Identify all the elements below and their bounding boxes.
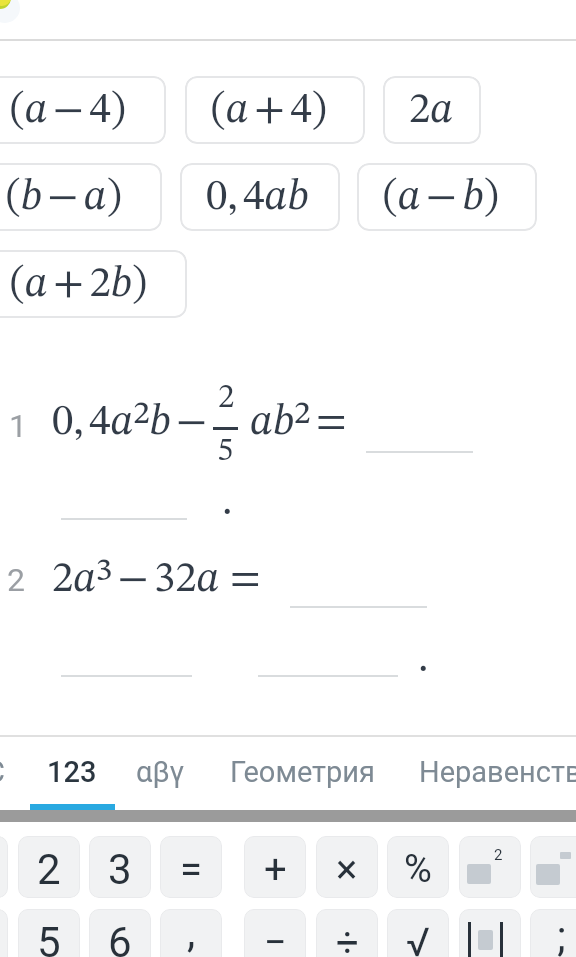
staticText: 123 (47, 755, 97, 789)
staticText: Неравенства (419, 755, 576, 789)
button[interactable]: ; (530, 909, 576, 957)
button[interactable]: (a + 2b) (0, 250, 187, 318)
staticText: 1 (9, 407, 27, 445)
staticText: √ (406, 919, 430, 957)
staticText: ; (557, 912, 566, 957)
button[interactable]: 2 (18, 836, 80, 898)
staticText: . (222, 481, 233, 524)
staticText: . (418, 638, 429, 681)
button[interactable]: (a + 4) (185, 76, 365, 144)
button[interactable]: , (160, 909, 222, 957)
staticText: 0, 4ab (206, 176, 309, 219)
staticText: 2 (7, 561, 25, 599)
staticText: С (0, 755, 5, 789)
staticText: (a + 4) (211, 89, 327, 132)
button[interactable] (530, 836, 576, 898)
button[interactable]: С (0, 755, 5, 789)
button[interactable]: 0, 4ab (180, 163, 340, 231)
button[interactable]: % (387, 836, 449, 898)
staticText: 2a (409, 89, 454, 132)
button[interactable]: × (316, 836, 378, 898)
staticText: % (404, 847, 432, 892)
staticText: = (180, 846, 202, 893)
staticText: αβγ (136, 755, 185, 789)
button[interactable]: αβγ (136, 755, 185, 789)
button[interactable]: + (244, 836, 306, 898)
staticText: × (336, 846, 358, 893)
button[interactable] (459, 909, 521, 957)
button[interactable]: 5 (18, 909, 80, 957)
staticText: (a + 2b) (10, 263, 147, 306)
button[interactable]: √ (387, 909, 449, 957)
staticText: Геометрия (230, 755, 375, 789)
button[interactable]: 3 (89, 836, 151, 898)
staticText: 2a³ − 32a = (52, 558, 261, 601)
button[interactable]: 1 (0, 836, 8, 898)
staticText: 2 (494, 846, 503, 864)
button[interactable]: Неравенства (419, 755, 576, 789)
staticText: 2 (218, 382, 235, 415)
staticText: 3 (108, 845, 132, 894)
button[interactable]: (a − 4) (0, 76, 166, 144)
button[interactable]: 123 (47, 755, 97, 789)
staticText: + (264, 846, 287, 893)
button[interactable]: 4 (0, 909, 8, 957)
staticText: ab² = (250, 401, 347, 444)
button[interactable]: (a − b) (357, 163, 537, 231)
staticText: ÷ (336, 919, 359, 957)
button[interactable]: 2 (459, 836, 521, 898)
staticText: − (264, 919, 287, 957)
staticText: (b − a) (6, 176, 122, 219)
staticText: , (187, 909, 196, 957)
staticText: 6 (108, 918, 132, 957)
button[interactable]: ÷ (316, 909, 378, 957)
button[interactable]: − (244, 909, 306, 957)
staticText: 0, 4a²b − (52, 401, 208, 444)
staticText: 2 (37, 845, 61, 894)
staticText: (a − b) (383, 176, 499, 219)
button[interactable]: (b − a) (0, 163, 162, 231)
button[interactable]: Геометрия (230, 755, 375, 789)
staticText: 5 (217, 435, 234, 468)
staticText: (a − 4) (10, 89, 126, 132)
button[interactable]: = (160, 836, 222, 898)
staticText: 5 (37, 918, 61, 957)
button[interactable]: 6 (89, 909, 151, 957)
button[interactable]: 2a (383, 76, 481, 144)
